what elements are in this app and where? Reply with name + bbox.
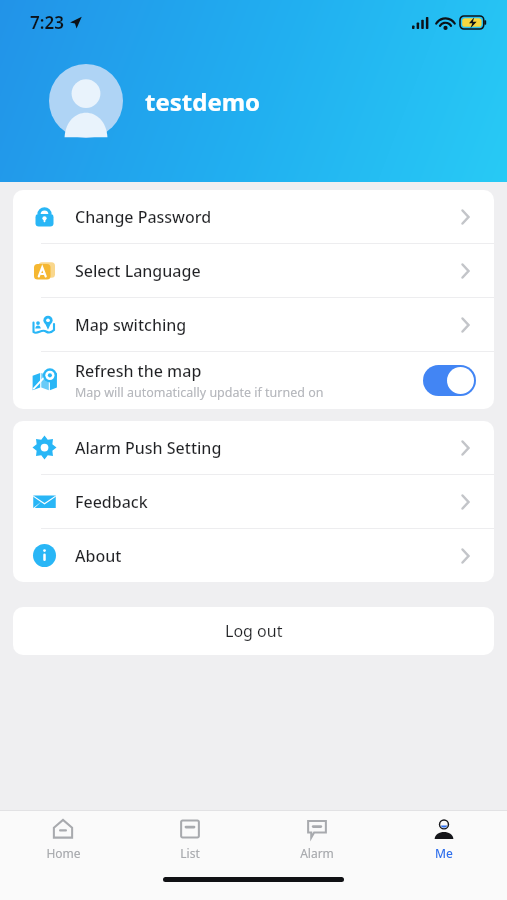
button[interactable]: Select Language xyxy=(13,244,494,297)
staticText: About xyxy=(75,545,122,567)
staticText: Me xyxy=(435,845,453,861)
staticText: Map switching xyxy=(75,314,187,336)
staticText: Alarm Push Setting xyxy=(75,437,222,459)
button[interactable]: Refresh the map toggle, on xyxy=(423,365,476,396)
button[interactable]: Log out xyxy=(13,607,494,655)
staticText: Log out xyxy=(225,620,283,642)
button[interactable]: Home xyxy=(0,811,126,866)
staticText: Feedback xyxy=(75,491,148,513)
staticText: Refresh the map xyxy=(75,360,202,382)
staticText: testdemo xyxy=(145,85,261,118)
button[interactable]: Me xyxy=(380,811,507,866)
button[interactable]: Alarm xyxy=(253,811,380,866)
staticText: Select Language xyxy=(75,260,201,282)
staticText: Home xyxy=(46,845,81,861)
button[interactable]: List xyxy=(126,811,253,866)
staticText: Alarm xyxy=(300,845,334,861)
button[interactable]: testdemo xyxy=(49,64,261,138)
staticText: List xyxy=(180,845,200,861)
staticText: Change Password xyxy=(75,206,212,228)
button[interactable]: About xyxy=(13,529,494,582)
button[interactable]: Feedback xyxy=(13,475,494,528)
button[interactable]: Alarm Push Setting xyxy=(13,421,494,474)
button[interactable]: Change Password xyxy=(13,190,494,243)
button[interactable]: Refresh the map xyxy=(13,352,494,409)
staticText: Map will automatically update if turned … xyxy=(75,384,324,401)
staticText: 7:23 xyxy=(30,11,64,34)
button[interactable]: Map switching xyxy=(13,298,494,351)
